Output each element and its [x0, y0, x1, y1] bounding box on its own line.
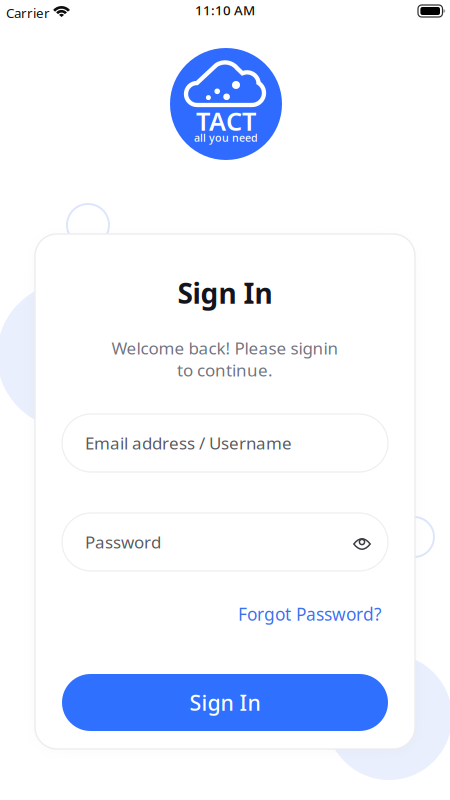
staticText: Welcome back! Please signin	[111, 336, 338, 360]
staticText: Sign In	[177, 274, 272, 312]
staticText: 11:10 AM	[195, 1, 255, 19]
button[interactable]: Sign In	[62, 674, 388, 731]
staticText: Email address / Username	[85, 431, 292, 455]
staticText: Forgot Password?	[238, 602, 382, 625]
staticText: all you need	[194, 130, 258, 145]
staticText: Sign In	[189, 688, 260, 717]
button[interactable]: Forgot Password?	[56, 603, 382, 625]
staticText: Password	[85, 530, 161, 554]
staticText: to continue.	[177, 358, 273, 382]
staticText: Carrier	[6, 4, 50, 22]
staticText: TACT	[196, 104, 256, 138]
